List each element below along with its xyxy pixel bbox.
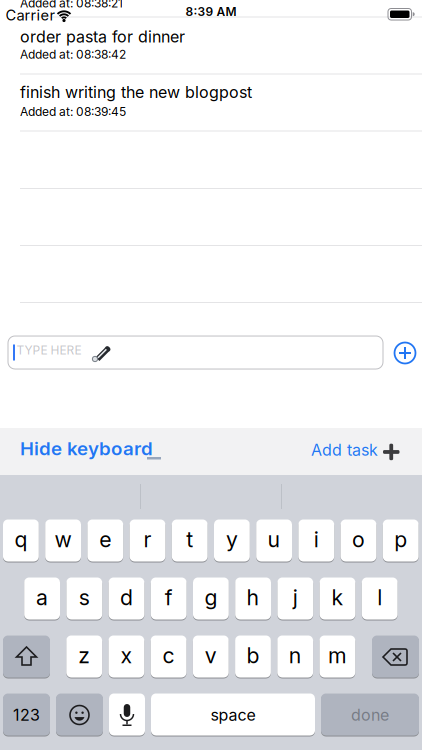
button[interactable]: n <box>277 636 313 678</box>
button[interactable]: p <box>383 520 419 562</box>
staticText: space <box>210 706 255 724</box>
staticText: l <box>377 585 382 610</box>
staticText: q <box>14 527 27 552</box>
staticText: o <box>352 527 365 552</box>
staticText: TYPE HERE <box>16 343 81 357</box>
button[interactable]: j <box>277 578 313 620</box>
button[interactable]: done <box>321 694 419 736</box>
button[interactable]: c <box>151 636 186 678</box>
staticText: r <box>143 527 151 552</box>
button[interactable]: t <box>172 520 208 562</box>
staticText: done <box>351 706 389 724</box>
staticText: 123 <box>13 706 40 724</box>
button[interactable]: y <box>214 520 250 562</box>
button[interactable]: e <box>87 520 123 562</box>
staticText: 8:39 AM <box>185 4 236 19</box>
button[interactable]: o <box>341 520 376 562</box>
staticText: g <box>204 585 217 610</box>
staticText: j <box>293 585 298 610</box>
button[interactable]: a <box>24 578 60 620</box>
staticText: i <box>314 527 319 552</box>
button[interactable]: r <box>130 520 165 562</box>
button[interactable]: 123 <box>3 694 50 736</box>
button[interactable]: Add <box>394 342 415 363</box>
button[interactable]: h <box>235 578 271 620</box>
staticText: Added at: 08:38:21 <box>20 0 123 10</box>
staticText: order pasta for dinner <box>20 27 185 46</box>
staticText: c <box>163 643 175 668</box>
staticText: Added at: 08:38:42 <box>20 47 126 61</box>
staticText: k <box>331 585 343 610</box>
button[interactable]: k <box>320 578 355 620</box>
staticText: v <box>205 643 217 668</box>
button[interactable]: s <box>66 578 102 620</box>
button[interactable]: finish writing the new blogpost <box>20 83 422 139</box>
staticText: e <box>99 527 111 552</box>
staticText: Added at: 08:39:45 <box>20 104 126 119</box>
button[interactable]: x <box>108 636 144 678</box>
button[interactable]: order pasta for dinner <box>20 27 422 83</box>
button[interactable]: Shift <box>3 636 50 678</box>
button[interactable]: Hide keyboard <box>20 437 162 461</box>
staticText: Carrier <box>5 7 55 24</box>
button[interactable]: l <box>362 578 398 620</box>
button[interactable]: u <box>256 520 292 562</box>
button[interactable]: q <box>3 520 39 562</box>
button[interactable]: Add task <box>311 440 401 464</box>
button[interactable]: b <box>235 636 271 678</box>
staticText: h <box>247 585 260 610</box>
button[interactable]: Dictate <box>109 694 145 736</box>
staticText: Hide keyboard <box>20 437 153 459</box>
staticText: t <box>186 527 193 552</box>
button[interactable]: v <box>193 636 229 678</box>
staticText: x <box>120 643 132 668</box>
button[interactable]: w <box>45 520 81 562</box>
staticText: p <box>394 527 407 552</box>
button[interactable]: space <box>151 694 315 736</box>
staticText: m <box>328 643 347 668</box>
button[interactable]: m <box>319 636 355 678</box>
staticText: s <box>79 585 90 610</box>
button[interactable]: z <box>66 636 102 678</box>
button[interactable]: f <box>151 578 187 620</box>
staticText: u <box>268 527 281 552</box>
staticText: finish writing the new blogpost <box>20 83 252 102</box>
staticText: b <box>246 643 259 668</box>
button[interactable]: g <box>193 578 229 620</box>
button[interactable]: d <box>109 578 144 620</box>
staticText: Add task <box>311 440 378 459</box>
staticText: z <box>78 643 90 668</box>
staticText: f <box>165 585 173 610</box>
staticText: d <box>120 585 133 610</box>
button[interactable]: Delete <box>372 636 419 678</box>
staticText: w <box>55 527 72 552</box>
staticText: a <box>36 585 48 610</box>
staticText: n <box>289 643 302 668</box>
staticText: y <box>226 527 238 552</box>
button[interactable]: Emoji <box>56 694 103 736</box>
button[interactable]: i <box>298 520 334 562</box>
